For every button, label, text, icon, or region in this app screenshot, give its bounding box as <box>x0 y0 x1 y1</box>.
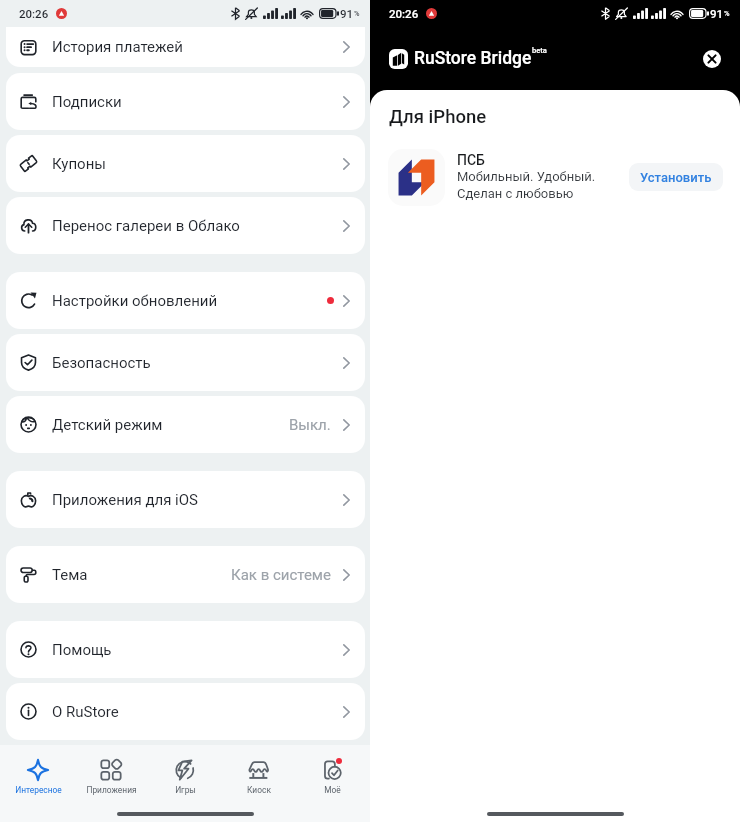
staticText: Для iPhone <box>389 106 487 128</box>
staticText: Подписки <box>52 93 122 111</box>
button[interactable]: Приложения <box>75 759 147 795</box>
staticText: 91 <box>710 7 724 20</box>
staticText: Перенос галереи в Облако <box>52 217 240 235</box>
staticText: Купоны <box>52 155 106 173</box>
staticText: Моё <box>324 785 341 795</box>
staticText: Безопасность <box>52 354 151 372</box>
staticText: Помощь <box>52 641 112 659</box>
staticText: % <box>724 9 730 18</box>
button[interactable]: ПСБ <box>388 148 723 206</box>
button[interactable]: О RuStore <box>6 683 365 740</box>
staticText: ПСБ <box>457 152 485 168</box>
staticText: RuStore Bridge <box>414 48 532 69</box>
staticText: 20:26 <box>19 7 49 20</box>
staticText: История платежей <box>52 38 183 56</box>
button[interactable]: Киоск <box>223 759 295 795</box>
staticText: Как в системе <box>231 566 331 584</box>
button[interactable]: Приложения для iOS <box>6 471 365 528</box>
button[interactable]: Помощь <box>6 621 365 678</box>
staticText: Киоск <box>247 785 271 795</box>
staticText: Выкл. <box>289 416 331 434</box>
button[interactable]: Close <box>703 50 721 68</box>
staticText: О RuStore <box>52 703 119 721</box>
staticText: Приложения <box>86 785 137 795</box>
button[interactable]: Безопасность <box>6 334 365 391</box>
button[interactable]: Перенос галереи в Облако <box>6 197 365 254</box>
staticText: Игры <box>175 785 196 795</box>
button[interactable]: Подписки <box>6 73 365 130</box>
staticText: 91 <box>340 7 354 20</box>
button[interactable]: История платежей <box>6 27 365 67</box>
staticText: Приложения для iOS <box>52 491 198 509</box>
button[interactable]: Моё <box>296 759 368 795</box>
staticText: Установить <box>640 170 712 185</box>
staticText: 20:26 <box>389 7 419 20</box>
staticText: beta <box>532 46 547 55</box>
staticText: Детский режим <box>52 416 163 434</box>
staticText: Настройки обновлений <box>52 292 218 310</box>
staticText: Интересное <box>15 785 62 795</box>
button[interactable]: Тема <box>6 546 365 603</box>
button[interactable]: Купоны <box>6 135 365 192</box>
button[interactable]: Установить <box>629 163 723 191</box>
staticText: Тема <box>52 566 88 584</box>
button[interactable]: Интересное <box>2 759 74 795</box>
staticText: Мобильный. Удобный. Сделан с любовью <box>457 169 596 202</box>
button[interactable]: Игры <box>149 759 221 795</box>
button[interactable]: Настройки обновлений <box>6 272 365 329</box>
button[interactable]: Детский режим <box>6 396 365 453</box>
staticText: % <box>354 9 360 18</box>
